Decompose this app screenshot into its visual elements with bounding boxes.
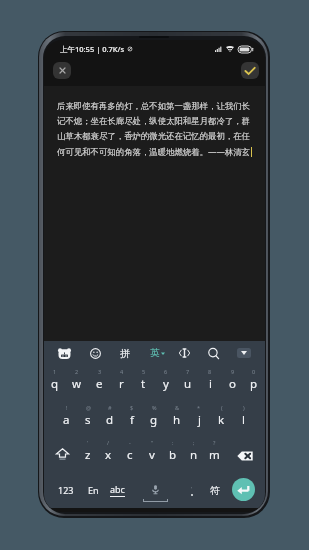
staticText: k (218, 412, 225, 428)
button[interactable]: Emoji (84, 344, 106, 362)
staticText: q (51, 376, 59, 392)
staticText: % (152, 404, 157, 411)
button[interactable]: abc (105, 474, 129, 506)
button[interactable]: ) (232, 402, 254, 430)
staticText: e (96, 376, 103, 392)
staticText: t (141, 376, 146, 392)
button[interactable]: 7 (177, 366, 199, 394)
staticText: 0 (252, 368, 256, 375)
staticText: l (242, 412, 245, 428)
button[interactable]: 2 (66, 366, 88, 394)
staticText: b (169, 447, 177, 463)
button[interactable]: ' (183, 474, 201, 506)
button[interactable]: 0 (243, 366, 265, 394)
staticText: g (150, 412, 158, 428)
button[interactable]: Done (241, 62, 259, 79)
button[interactable]: ! (55, 402, 77, 430)
staticText: 后来即使有再多的灯，总不如第一盏那样，让我们长 (57, 101, 250, 112)
button[interactable]: : (162, 437, 183, 465)
button[interactable]: IME (53, 344, 75, 362)
staticText: " (151, 439, 154, 446)
staticText: 英 (150, 347, 160, 359)
staticText: ) (243, 404, 245, 411)
staticText: * (197, 404, 201, 411)
staticText: 记不熄；坐在长廊尽处，纵使太阳和星月都冷了，群 (57, 116, 250, 127)
staticText: $ (130, 404, 134, 411)
staticText: 3 (98, 368, 102, 375)
staticText: d (106, 412, 114, 428)
staticText: : (172, 439, 174, 446)
staticText: h (173, 412, 181, 428)
staticText: ? (213, 439, 216, 446)
button[interactable]: Hide keyboard (233, 344, 255, 362)
button[interactable]: & (166, 402, 188, 430)
staticText: 符 (210, 484, 220, 497)
staticText: ! (66, 404, 68, 411)
staticText: r (119, 376, 124, 392)
button[interactable]: Close (53, 62, 71, 79)
staticText: ( (221, 404, 223, 411)
button[interactable]: 拼 (114, 344, 136, 362)
staticText: f (130, 412, 134, 428)
staticText: a (63, 412, 70, 428)
button[interactable]: Backspace (231, 442, 259, 470)
staticText: z (85, 447, 91, 463)
staticText: - (129, 439, 131, 446)
staticText: 123 (58, 484, 74, 496)
staticText: y (163, 376, 169, 392)
button[interactable]: ' (77, 437, 98, 465)
button[interactable]: 3 (88, 366, 110, 394)
button[interactable]: Shift (50, 440, 74, 468)
button[interactable]: Enter (232, 478, 255, 501)
button[interactable]: 9 (221, 366, 243, 394)
staticText: m (209, 447, 220, 463)
staticText: 何可见和不可知的角落，温暖地燃烧着。——林清玄 (57, 146, 250, 157)
button[interactable]: - (119, 437, 140, 465)
staticText: 山草木都衰尽了，香炉的微光还在记忆的最初，在任 (57, 131, 250, 142)
button[interactable]: 符 (204, 474, 226, 506)
button[interactable]: # (99, 402, 121, 430)
staticText: ; (193, 439, 195, 446)
staticText: @ (86, 404, 91, 411)
button[interactable]: @ (77, 402, 99, 430)
staticText: n (190, 447, 198, 463)
button[interactable]: En (82, 474, 104, 506)
button[interactable]: Move cursor (173, 344, 195, 362)
button[interactable]: 8 (199, 366, 221, 394)
staticText: v (149, 447, 155, 463)
staticText: s (85, 412, 91, 428)
staticText: & (175, 404, 180, 411)
button[interactable]: 英 (146, 344, 168, 362)
button[interactable]: ( (210, 402, 232, 430)
staticText: 7 (186, 368, 190, 375)
staticText: c (127, 447, 133, 463)
button[interactable]: $ (121, 402, 143, 430)
button[interactable]: * (188, 402, 210, 430)
button[interactable]: 4 (110, 366, 132, 394)
staticText: 6 (164, 368, 168, 375)
button[interactable]: ; (183, 437, 204, 465)
staticText: ' (191, 485, 193, 493)
staticText: j (198, 412, 201, 428)
button[interactable]: 1 (44, 366, 66, 394)
button[interactable]: 5 (132, 366, 154, 394)
staticText: 5 (142, 368, 146, 375)
staticText: 上午10:55 | 0.7K/s (60, 44, 125, 54)
button[interactable]: / (98, 437, 119, 465)
button[interactable]: % (143, 402, 165, 430)
staticText: 1 (53, 368, 57, 375)
staticText: 拼 (120, 347, 130, 360)
button[interactable]: ? (204, 437, 225, 465)
button[interactable]: 6 (155, 366, 177, 394)
staticText: u (184, 376, 192, 392)
button[interactable]: Space (127, 474, 183, 506)
button[interactable]: 123 (53, 474, 79, 506)
staticText: ' (87, 439, 89, 446)
staticText: 9 (231, 368, 235, 375)
button[interactable]: " (141, 437, 162, 465)
staticText: x (105, 447, 112, 463)
staticText: abc (110, 483, 125, 495)
staticText: i (209, 376, 212, 392)
button[interactable]: Search (202, 344, 224, 362)
staticText: 8 (208, 368, 212, 375)
